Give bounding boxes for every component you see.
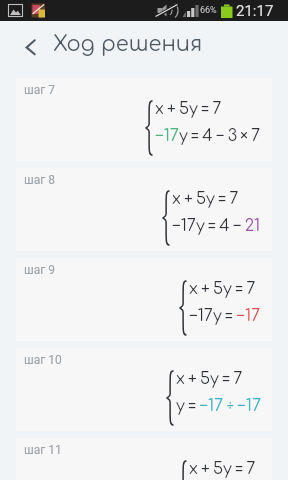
button[interactable]: шаг 11 [16, 438, 272, 480]
staticText: шаг 8 [24, 173, 55, 187]
staticText: −17y = 4 − 3 × 7 [155, 127, 261, 145]
staticText: x + 5y = 7 [155, 100, 222, 118]
staticText: шаг 11 [24, 443, 62, 457]
staticText: шаг 7 [24, 83, 55, 97]
button[interactable]: шаг 8 [16, 168, 272, 251]
button[interactable]: шаг 7 [16, 78, 272, 161]
button[interactable]: шаг 10 [16, 348, 272, 431]
staticText: Ход решения [53, 32, 203, 55]
staticText: x + 5y = 7 [189, 460, 256, 478]
staticText: x + 5y = 7 [172, 190, 239, 208]
staticText: 21:17 [236, 2, 274, 20]
staticText: x + 5y = 7 [189, 280, 256, 298]
staticText: y = −17 ÷ −17 [176, 397, 261, 415]
staticText: x + 5y = 7 [176, 370, 243, 388]
button[interactable]: шаг 9 [16, 258, 272, 341]
staticText: шаг 10 [24, 353, 62, 367]
staticText: −17y = 4 − 21 [172, 217, 261, 235]
button[interactable]: Back [14, 33, 42, 61]
staticText: шаг 9 [24, 263, 55, 277]
staticText: 66% [200, 5, 217, 16]
staticText: −17y = −17 [189, 307, 261, 325]
